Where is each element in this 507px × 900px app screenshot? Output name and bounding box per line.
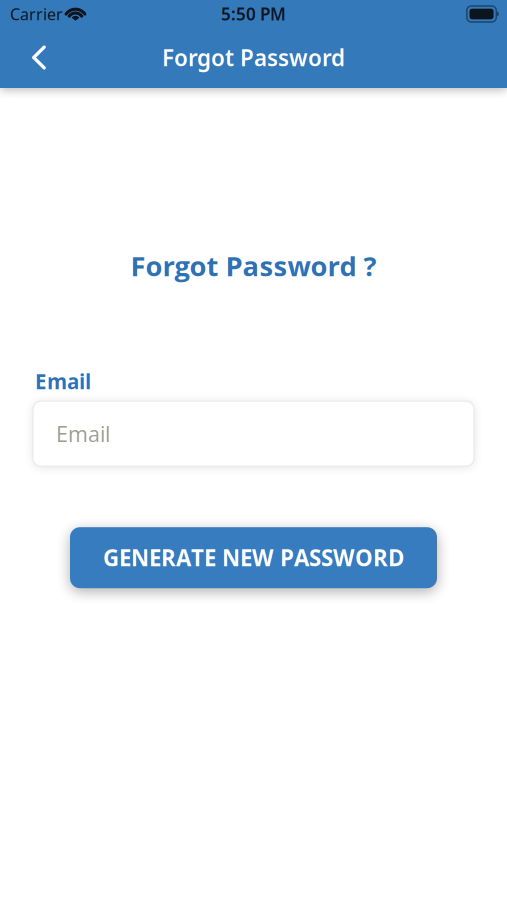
button[interactable]: GENERATE NEW PASSWORD	[70, 527, 437, 588]
staticText: Email	[56, 419, 110, 448]
staticText: Forgot Password	[162, 42, 345, 73]
staticText: Email	[35, 367, 91, 395]
staticText: Forgot Password ?	[130, 247, 376, 284]
staticText: GENERATE NEW PASSWORD	[103, 542, 404, 573]
staticText: Carrier	[10, 3, 63, 25]
textField[interactable]: Email	[56, 419, 249, 448]
button[interactable]: Back	[0, 31, 46, 83]
staticText: 5:50 PM	[221, 2, 286, 26]
